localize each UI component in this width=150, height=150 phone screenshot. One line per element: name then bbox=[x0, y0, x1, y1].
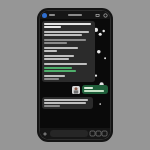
button[interactable] bbox=[42, 97, 93, 109]
button[interactable]: Photo bbox=[72, 86, 80, 94]
button[interactable]: Call bbox=[103, 13, 108, 18]
button[interactable]: Video call bbox=[96, 13, 101, 18]
button[interactable]: Profile bbox=[42, 13, 47, 18]
button[interactable] bbox=[82, 85, 108, 94]
button[interactable]: Sticker bbox=[90, 131, 95, 136]
button[interactable] bbox=[42, 21, 95, 82]
button[interactable]: Camera bbox=[96, 131, 101, 136]
button[interactable]: Microphone bbox=[102, 131, 107, 136]
button[interactable]: Attach bbox=[42, 131, 48, 137]
